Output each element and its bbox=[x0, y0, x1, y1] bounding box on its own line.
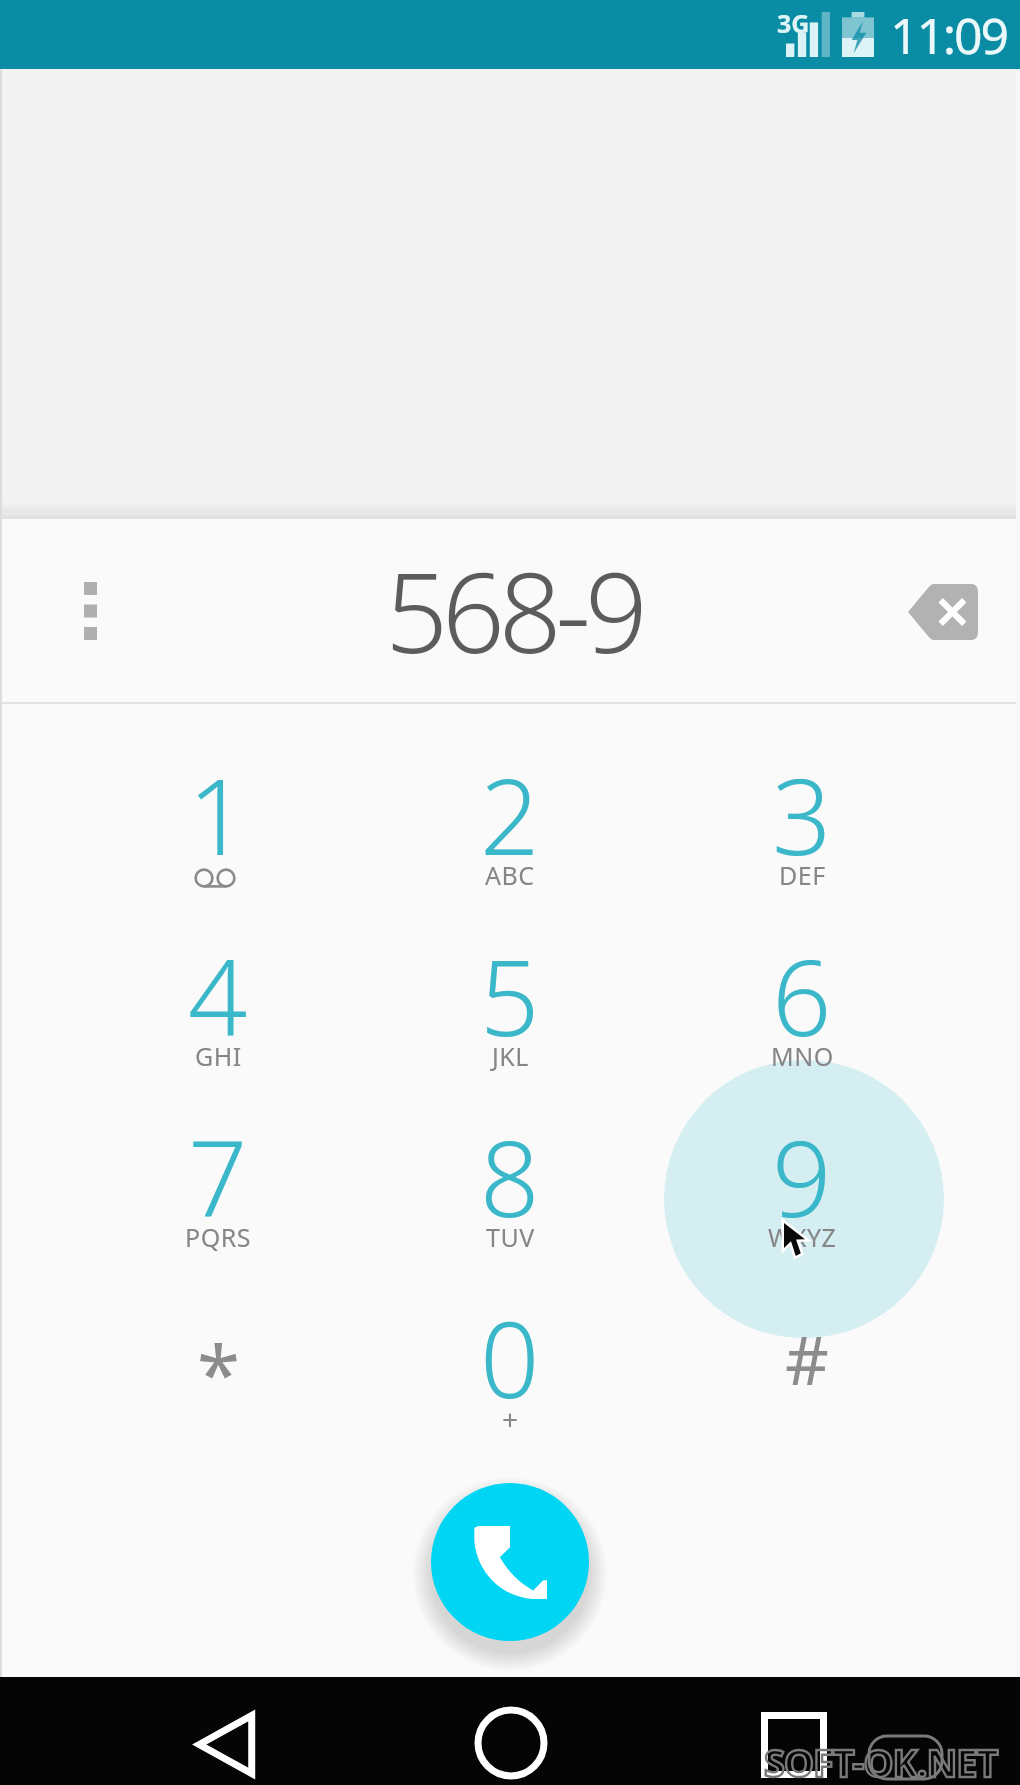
button[interactable]: 9 bbox=[656, 1091, 948, 1272]
staticText: 9 bbox=[772, 1106, 832, 1248]
staticText: 4 bbox=[188, 925, 248, 1067]
button[interactable]: Call bbox=[431, 1483, 589, 1641]
staticText: TUV bbox=[486, 1220, 535, 1254]
staticText: SOFT-OK.NET bbox=[764, 1736, 998, 1785]
staticText: 8 bbox=[480, 1106, 540, 1248]
button[interactable]: 1 bbox=[72, 729, 364, 910]
staticText: PQRS bbox=[185, 1220, 251, 1254]
button[interactable]: Recent apps bbox=[734, 1695, 854, 1785]
button[interactable]: 2 bbox=[364, 729, 656, 910]
staticText: 2 bbox=[480, 744, 540, 886]
staticText: 3 bbox=[772, 744, 832, 886]
button[interactable]: 8 bbox=[364, 1091, 656, 1272]
staticText: 5 bbox=[480, 925, 540, 1067]
staticText: 3G bbox=[777, 6, 810, 40]
button[interactable]: 7 bbox=[72, 1091, 364, 1272]
staticText: GHI bbox=[195, 1039, 242, 1073]
button[interactable]: Home bbox=[451, 1693, 571, 1785]
button[interactable]: 0 bbox=[364, 1272, 656, 1453]
button[interactable]: * bbox=[72, 1272, 364, 1453]
button[interactable]: # bbox=[656, 1272, 948, 1453]
staticText: # bbox=[785, 1312, 829, 1405]
staticText: * bbox=[197, 1320, 240, 1426]
staticText: WXYZ bbox=[768, 1220, 837, 1254]
staticText: ABC bbox=[485, 858, 535, 892]
button[interactable]: Backspace bbox=[893, 572, 993, 652]
button[interactable]: 6 bbox=[656, 910, 948, 1091]
button[interactable]: 5 bbox=[364, 910, 656, 1091]
staticText: + bbox=[502, 1400, 519, 1438]
staticText: MNO bbox=[771, 1039, 834, 1073]
staticText: 7 bbox=[188, 1106, 248, 1248]
button[interactable]: More options bbox=[50, 571, 130, 651]
button[interactable]: 3 bbox=[656, 729, 948, 910]
staticText: 0 bbox=[480, 1287, 540, 1429]
staticText: 568-9 bbox=[385, 535, 642, 685]
staticText: 1 bbox=[188, 744, 248, 886]
button[interactable]: Back bbox=[164, 1694, 284, 1785]
staticText: 11:09 bbox=[890, 1, 1007, 69]
staticText: DEF bbox=[779, 858, 826, 892]
button[interactable]: 4 bbox=[72, 910, 364, 1091]
staticText: 6 bbox=[772, 925, 832, 1067]
staticText: JKL bbox=[492, 1039, 529, 1073]
